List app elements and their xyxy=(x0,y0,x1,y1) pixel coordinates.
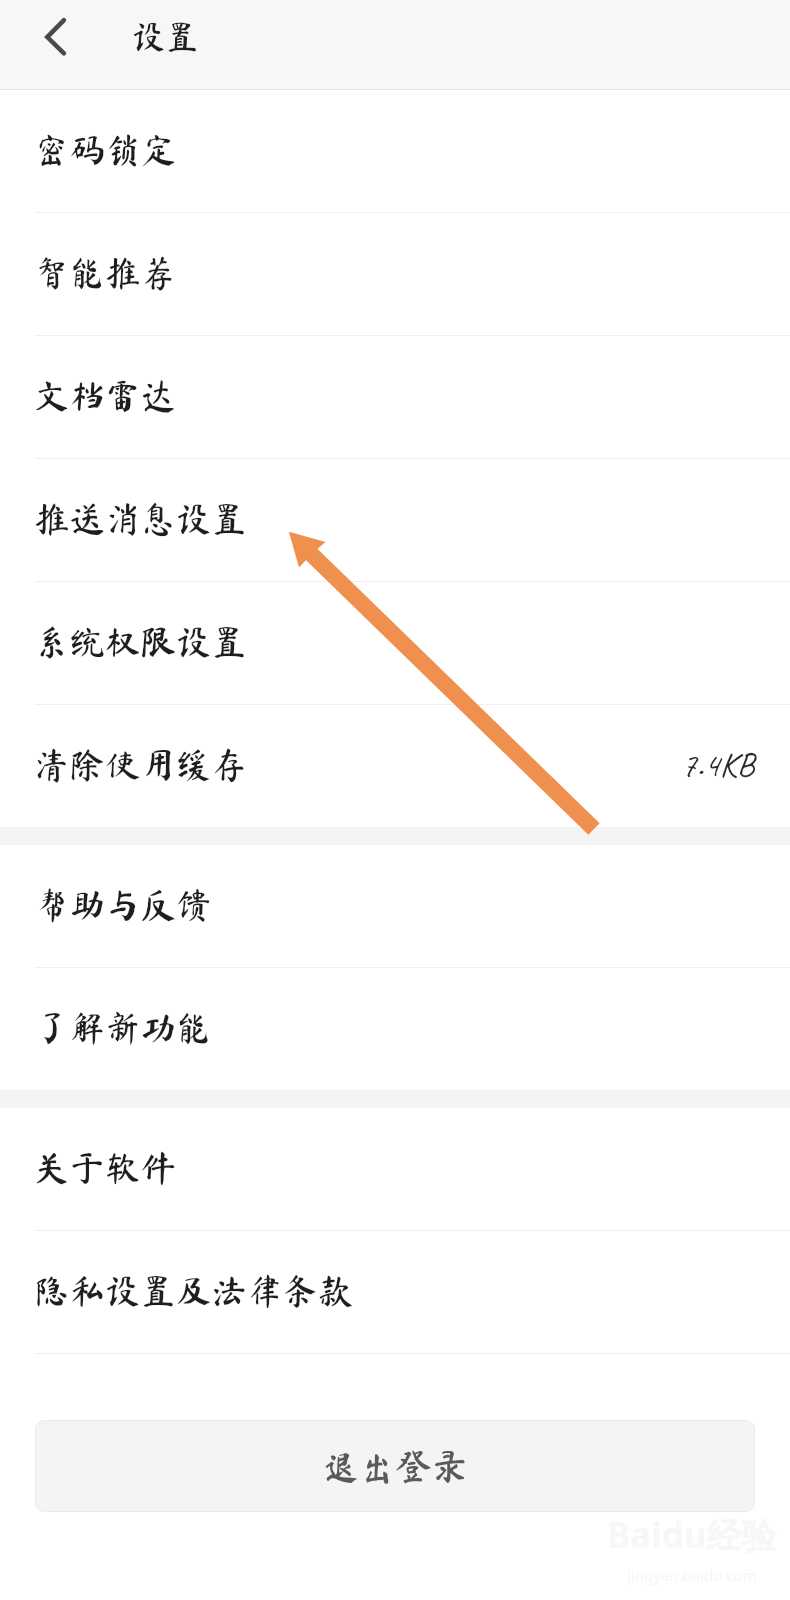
button[interactable]: 智能推荐 xyxy=(0,213,790,335)
button[interactable]: Back xyxy=(18,6,80,68)
staticText: 文档雷达 xyxy=(34,378,177,413)
button[interactable]: 密码锁定 xyxy=(0,90,790,212)
button[interactable]: 隐私设置及法律条款 xyxy=(0,1231,790,1353)
button[interactable]: 清除使用缓存 xyxy=(0,705,790,827)
button[interactable]: 退出登录 xyxy=(35,1420,755,1512)
button[interactable]: 文档雷达 xyxy=(0,336,790,458)
staticText: 系统权限设置 xyxy=(34,624,248,659)
staticText: 智能推荐 xyxy=(34,255,177,290)
staticText: 退出登录 xyxy=(322,1448,468,1484)
button[interactable]: 关于软件 xyxy=(0,1108,790,1230)
staticText: 隐私设置及法律条款 xyxy=(34,1273,354,1308)
staticText: 推送消息设置 xyxy=(34,501,248,536)
staticText: Baidu经验 xyxy=(607,1511,777,1559)
staticText: 帮助与反馈 xyxy=(34,887,212,922)
button[interactable]: 推送消息设置 xyxy=(0,459,790,581)
staticText: 关于软件 xyxy=(34,1150,177,1185)
staticText: 了解新功能 xyxy=(34,1010,212,1045)
staticText: 7.4KB xyxy=(681,742,755,786)
button[interactable]: 系统权限设置 xyxy=(0,582,790,704)
staticText: 密码锁定 xyxy=(34,132,177,167)
staticText: 设置 xyxy=(132,20,199,53)
button[interactable]: 帮助与反馈 xyxy=(0,845,790,967)
staticText: 清除使用缓存 xyxy=(34,747,248,782)
button[interactable]: 了解新功能 xyxy=(0,968,790,1090)
